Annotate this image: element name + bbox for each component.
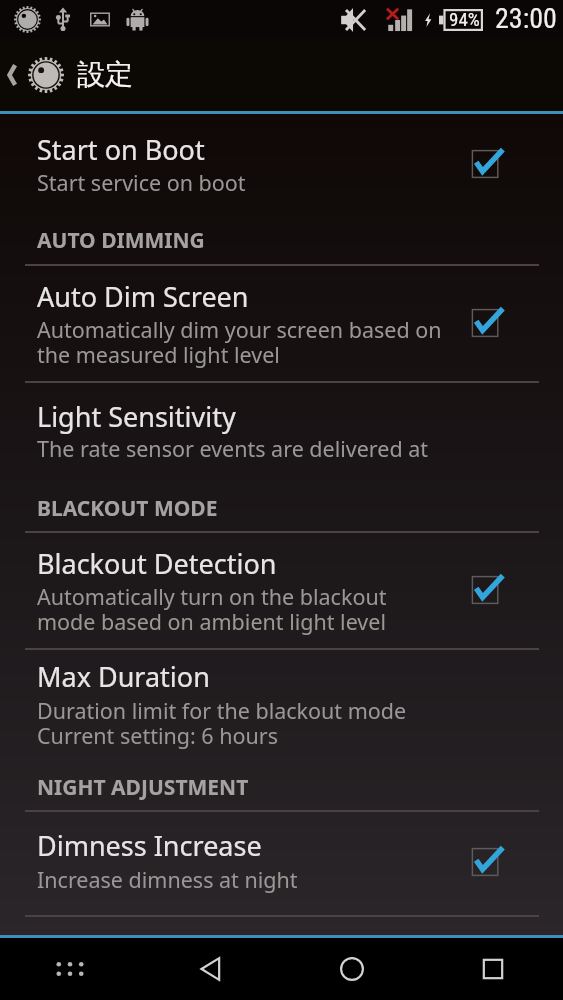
- staticText: 設定: [77, 57, 133, 92]
- staticText: BLACKOUT MODE: [37, 494, 218, 523]
- staticText: Increase dimness at night: [37, 865, 298, 894]
- staticText: Start service on boot: [37, 168, 246, 197]
- staticText: Automatically turn on the blackout: [37, 582, 387, 611]
- staticText: mode based on ambient light level: [37, 607, 386, 636]
- button[interactable]: Light Sensitivity: [0, 381, 563, 470]
- button[interactable]: Menu: [0, 938, 140, 1000]
- staticText: The rate sensor events are delivered at: [37, 434, 429, 463]
- button[interactable]: Start on Boot: [0, 114, 563, 213]
- button[interactable]: Recent apps: [422, 938, 563, 1000]
- button[interactable]: Blackout Detection: [0, 531, 563, 648]
- button[interactable]: Max Duration: [0, 648, 563, 755]
- staticText: Current setting: 6 hours: [37, 721, 278, 750]
- staticText: Duration limit for the blackout mode: [37, 696, 407, 725]
- staticText: 23:00: [495, 2, 557, 35]
- button[interactable]: Blackout Detection: [455, 561, 513, 619]
- button[interactable]: Navigate up: [0, 49, 68, 101]
- staticText: Auto Dim Screen: [37, 278, 249, 315]
- staticText: NIGHT ADJUSTMENT: [37, 773, 249, 802]
- staticText: Light Sensitivity: [37, 398, 236, 435]
- button[interactable]: Back: [140, 938, 281, 1000]
- staticText: Blackout Detection: [37, 545, 277, 582]
- button[interactable]: Start on Boot: [455, 135, 513, 193]
- staticText: AUTO DIMMING: [37, 226, 205, 255]
- staticText: Start on Boot: [37, 131, 205, 168]
- staticText: the measured light level: [37, 340, 280, 369]
- staticText: Automatically dim your screen based on: [37, 315, 442, 344]
- staticText: Dimness Increase: [37, 827, 262, 864]
- staticText: Max Duration: [37, 658, 210, 695]
- button[interactable]: Auto Dim Screen: [455, 294, 513, 352]
- button[interactable]: Home: [281, 938, 422, 1000]
- button[interactable]: Dimness Increase: [455, 833, 513, 891]
- button[interactable]: Dimness Increase: [0, 810, 563, 915]
- staticText: 94%: [449, 8, 480, 30]
- button[interactable]: Auto Dim Screen: [0, 264, 563, 381]
